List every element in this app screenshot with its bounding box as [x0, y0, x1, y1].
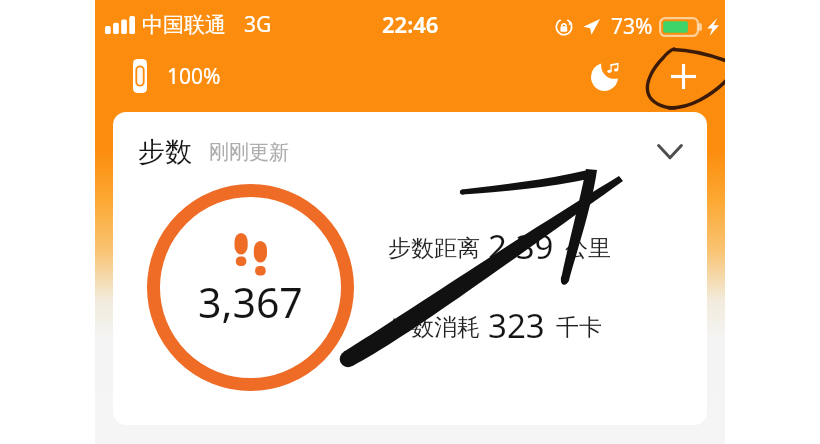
staticText: 步数: [138, 135, 192, 169]
button[interactable]: Sleep music: [583, 54, 627, 98]
button[interactable]: Collapse: [648, 130, 692, 174]
staticText: 323: [488, 303, 545, 347]
staticText: 22:46: [382, 9, 439, 39]
button[interactable]: 步数: [113, 112, 707, 425]
staticText: 公里: [565, 234, 611, 263]
staticText: 步数距离: [388, 234, 480, 263]
staticText: 中国联通: [142, 12, 226, 38]
staticText: 73%: [611, 12, 653, 41]
staticText: 3,367: [198, 274, 303, 330]
staticText: 刚刚更新: [209, 140, 289, 165]
button[interactable]: Add device: [661, 54, 705, 98]
staticText: 3G: [244, 10, 272, 39]
staticText: 千卡: [556, 313, 602, 342]
staticText: 步数消耗: [388, 313, 480, 342]
staticText: 100%: [167, 62, 221, 91]
button[interactable]: 100%: [128, 54, 226, 98]
staticText: 2.39: [488, 224, 554, 268]
